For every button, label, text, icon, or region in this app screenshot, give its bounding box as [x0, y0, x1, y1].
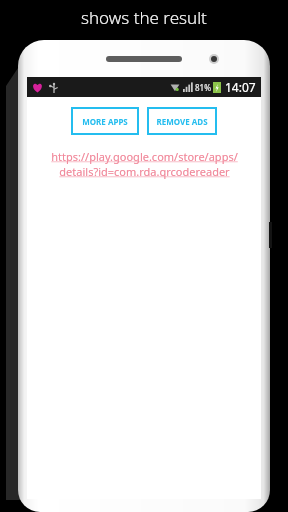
staticText: https://play.google.com/store/apps/	[51, 149, 238, 164]
staticText: 81%	[195, 82, 211, 93]
button[interactable]: https://play.google.com/store/apps/	[27, 149, 261, 179]
staticText: 14:07	[225, 79, 256, 95]
staticText: shows the result	[81, 6, 207, 29]
button[interactable]: REMOVE ADS	[147, 107, 217, 135]
staticText: details?id=com.rda.qrcodereader	[59, 164, 230, 179]
staticText: MORE APPS	[82, 116, 128, 127]
button[interactable]: MORE APPS	[71, 107, 139, 135]
staticText: REMOVE ADS	[156, 116, 208, 127]
